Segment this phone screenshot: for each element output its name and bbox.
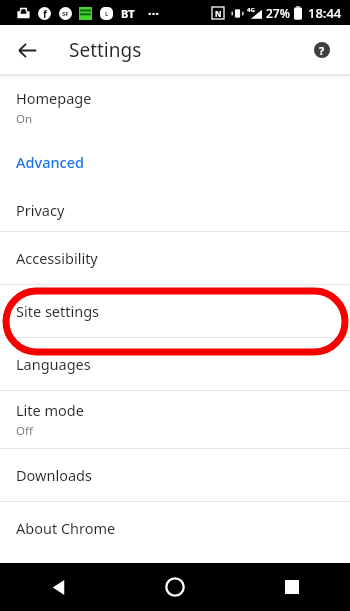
button[interactable]: Homepage [0,82,350,132]
staticText: Off [16,423,33,439]
button[interactable]: Home [116,563,233,611]
staticText: 18:44 [308,4,342,22]
staticText: 27% [266,5,290,21]
button[interactable]: Recent apps [233,563,350,611]
button[interactable]: Help [302,30,342,70]
staticText: About Chrome [16,518,116,538]
button[interactable]: About Chrome [0,502,350,554]
button[interactable]: Lite mode [0,391,350,448]
staticText: 4G [247,6,255,14]
staticText: SF [62,10,69,18]
button[interactable]: Site settings [0,285,350,337]
staticText: Privacy [16,200,65,220]
staticText: Settings [69,37,142,63]
staticText: Accessibility [16,248,98,268]
staticText: Site settings [16,301,100,321]
staticText: On [16,111,33,127]
button[interactable]: Downloads [0,449,350,501]
button[interactable]: Advanced [0,144,350,180]
staticText: Advanced [16,152,84,172]
button[interactable]: Languages [0,338,350,390]
button[interactable]: Back [7,30,47,70]
staticText: ··· [148,4,159,22]
staticText: Downloads [16,465,92,485]
staticText: Languages [16,354,91,374]
staticText: L [105,10,109,18]
staticText: Homepage [16,88,92,108]
button[interactable]: Accessibility [0,232,350,284]
staticText: ? [319,43,325,58]
staticText: f [43,7,47,20]
button[interactable]: Back [0,563,116,611]
staticText: N [215,8,222,19]
button[interactable]: Privacy [0,188,350,231]
staticText: BT [121,6,135,21]
staticText: Lite mode [16,400,84,420]
